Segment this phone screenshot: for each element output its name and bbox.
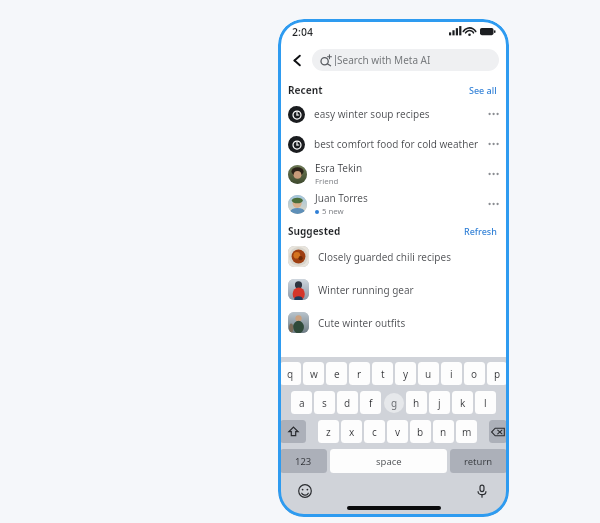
button[interactable]: h <box>406 391 427 414</box>
staticText: b <box>417 425 424 439</box>
button[interactable]: m <box>456 420 477 443</box>
staticText: e <box>334 367 340 381</box>
button[interactable]: Esra Tekin <box>278 159 509 189</box>
button[interactable]: i <box>441 362 462 385</box>
button[interactable]: Voice input <box>473 482 491 500</box>
staticText: v <box>395 425 401 439</box>
button[interactable]: n <box>433 420 454 443</box>
button[interactable]: o <box>464 362 485 385</box>
staticText: t <box>381 367 385 381</box>
staticText: s <box>322 396 327 410</box>
button[interactable]: d <box>337 391 358 414</box>
button[interactable]: Shift <box>280 420 306 443</box>
button[interactable]: f <box>360 391 381 414</box>
button[interactable]: easy winter soup recipes <box>278 99 509 129</box>
button[interactable]: j <box>429 391 450 414</box>
button[interactable]: t <box>372 362 393 385</box>
button[interactable]: Juan Torres <box>278 189 509 219</box>
staticText: m <box>462 425 472 439</box>
staticText: i <box>450 367 453 381</box>
button[interactable]: x <box>341 420 362 443</box>
staticText: Search with Meta AI <box>337 53 431 67</box>
staticText: z <box>326 425 331 439</box>
button[interactable]: r <box>349 362 370 385</box>
staticText: k <box>460 396 466 410</box>
staticText: 2:04 <box>292 25 313 39</box>
button[interactable]: More options <box>485 135 501 153</box>
staticText: return <box>464 455 493 468</box>
staticText: Friend <box>315 176 339 187</box>
button[interactable]: Refresh <box>462 224 499 238</box>
staticText: Recent <box>288 83 323 97</box>
staticText: space <box>376 455 402 468</box>
staticText: x <box>349 425 355 439</box>
staticText: j <box>438 396 441 410</box>
button[interactable]: q <box>280 362 301 385</box>
button[interactable]: Backspace <box>489 420 507 443</box>
button[interactable]: See all <box>467 83 499 97</box>
staticText: 5 new <box>322 206 344 217</box>
staticText: Closely guarded chili recipes <box>318 250 501 264</box>
button[interactable]: return <box>450 449 507 473</box>
button[interactable]: Winter running gear <box>278 273 509 306</box>
button[interactable]: More options <box>485 195 501 213</box>
button[interactable]: Closely guarded chili recipes <box>278 240 509 273</box>
button[interactable]: p <box>487 362 507 385</box>
staticText: Winter running gear <box>318 283 501 297</box>
staticText: r <box>357 367 362 381</box>
button[interactable]: k <box>452 391 473 414</box>
staticText: n <box>440 425 447 439</box>
button[interactable]: best comfort food for cold weather <box>278 129 509 159</box>
staticText: easy winter soup recipes <box>314 107 485 121</box>
button[interactable]: Cute winter outfits <box>278 306 509 339</box>
staticText: Refresh <box>464 225 497 237</box>
staticText: q <box>287 367 294 381</box>
staticText: c <box>372 425 377 439</box>
button[interactable]: g <box>384 393 404 413</box>
button[interactable]: More options <box>485 165 501 183</box>
staticText: w <box>310 367 318 381</box>
staticText: Juan Torres <box>315 191 368 205</box>
button[interactable]: v <box>387 420 408 443</box>
staticText: y <box>403 367 409 381</box>
button[interactable]: Back <box>286 49 308 71</box>
staticText: u <box>425 367 432 381</box>
staticText: Esra Tekin <box>315 161 363 175</box>
button[interactable]: y <box>395 362 416 385</box>
staticText: best comfort food for cold weather <box>314 137 485 151</box>
button[interactable]: a <box>291 391 312 414</box>
button[interactable]: z <box>318 420 339 443</box>
staticText: l <box>484 396 487 410</box>
button[interactable]: w <box>303 362 324 385</box>
button[interactable]: l <box>475 391 496 414</box>
button[interactable]: space <box>330 449 447 473</box>
staticText: 123 <box>295 455 312 468</box>
button[interactable]: Emoji <box>296 482 314 500</box>
button[interactable]: 123 <box>280 449 327 473</box>
staticText: o <box>471 367 478 381</box>
button[interactable]: e <box>326 362 347 385</box>
staticText: Cute winter outfits <box>318 316 501 330</box>
button[interactable]: b <box>410 420 431 443</box>
staticText: h <box>413 396 420 410</box>
staticText: f <box>369 396 373 410</box>
button[interactable]: Search with Meta AI <box>312 49 499 71</box>
staticText: g <box>391 396 398 410</box>
staticText: See all <box>469 84 497 96</box>
button[interactable]: u <box>418 362 439 385</box>
staticText: d <box>344 396 351 410</box>
button[interactable]: More options <box>485 105 501 123</box>
staticText: Suggested <box>288 224 341 238</box>
button[interactable]: s <box>314 391 335 414</box>
staticText: p <box>494 367 501 381</box>
staticText: a <box>299 396 305 410</box>
button[interactable]: c <box>364 420 385 443</box>
